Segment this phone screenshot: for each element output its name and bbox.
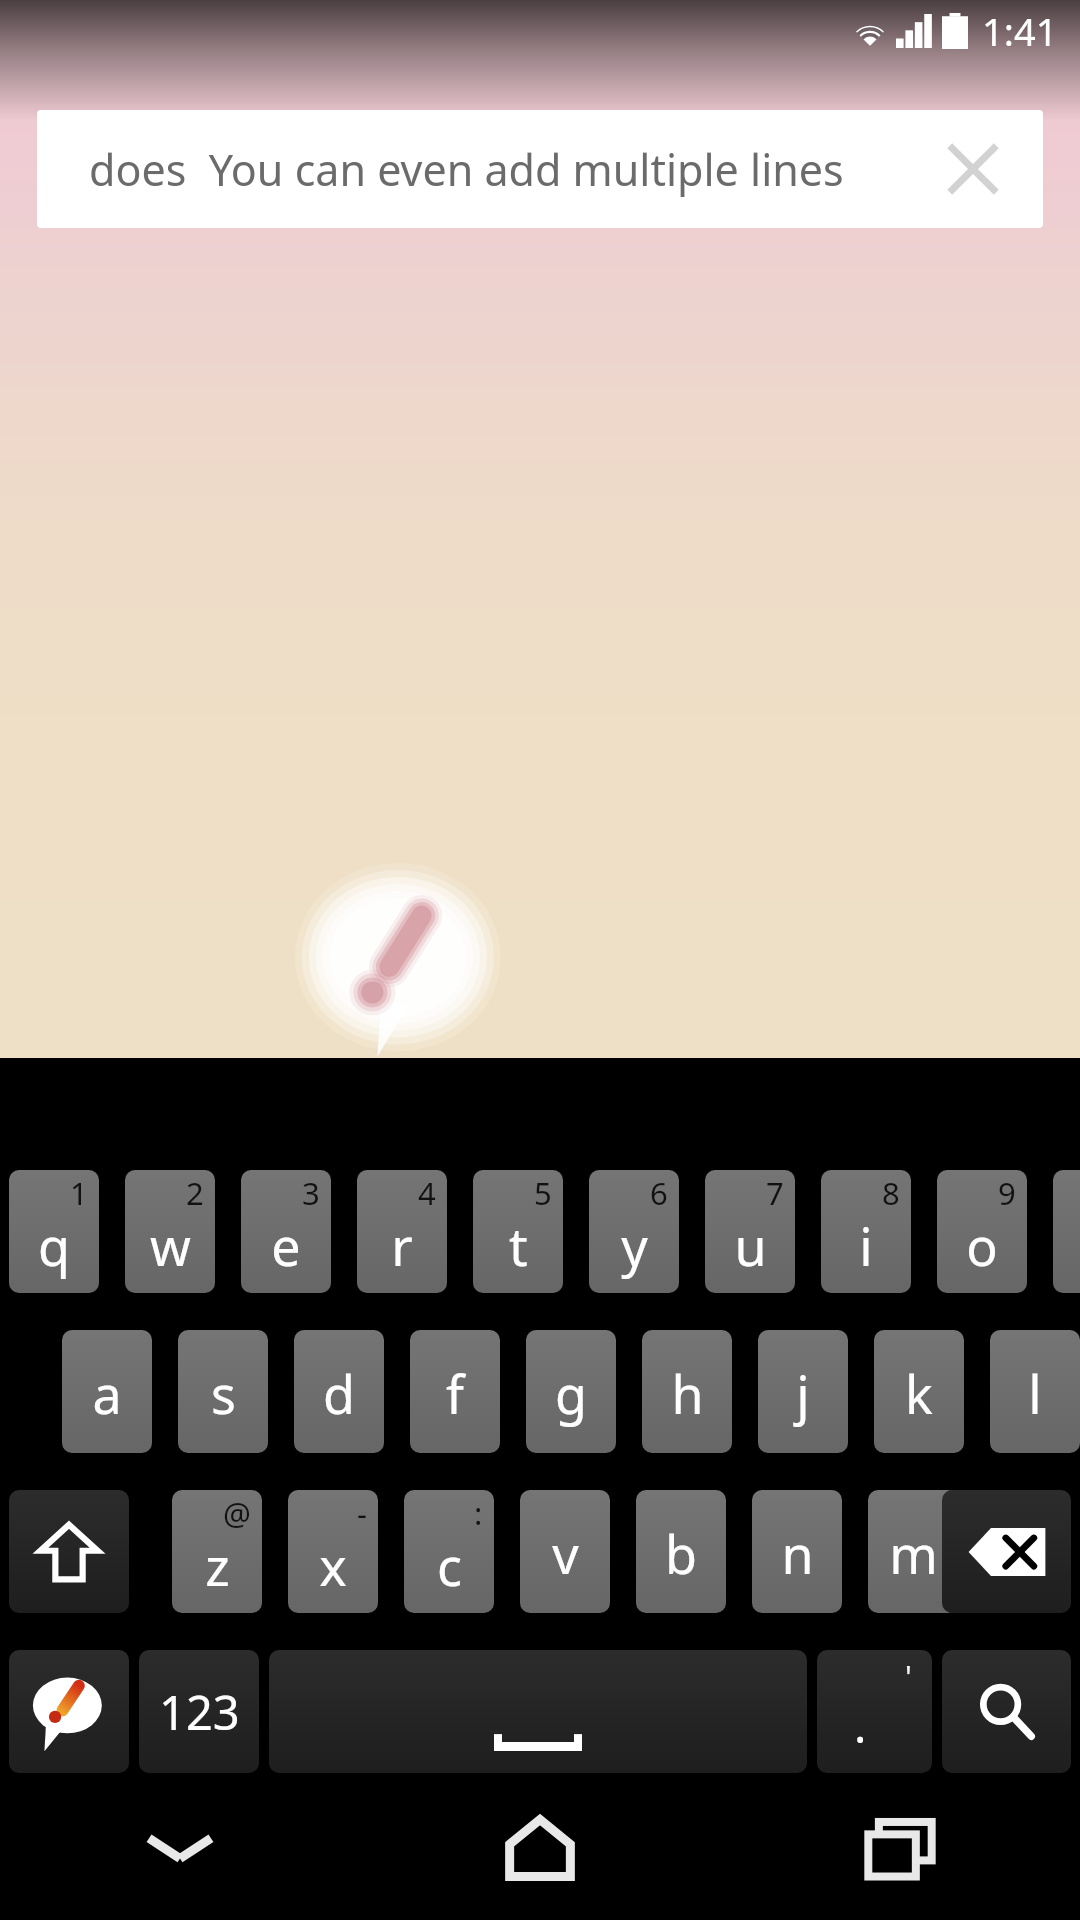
button[interactable]: Shift [9, 1490, 129, 1613]
button[interactable]: b [636, 1490, 726, 1613]
button[interactable]: Backspace [942, 1490, 1071, 1613]
button[interactable]: n [752, 1490, 842, 1613]
button[interactable]: Home [360, 1776, 720, 1920]
button[interactable]: Space [269, 1650, 807, 1773]
button[interactable]: does You can even add multiple lines [37, 110, 1043, 228]
button[interactable]: Hide keyboard [0, 1776, 360, 1920]
staticText: z [205, 1530, 230, 1601]
staticText: - [357, 1492, 367, 1534]
staticText: 2 [186, 1172, 204, 1214]
staticText: i [859, 1210, 873, 1281]
button[interactable]: l [990, 1330, 1080, 1453]
staticText: q [38, 1210, 70, 1281]
staticText: m [889, 1518, 938, 1589]
staticText: j [796, 1358, 810, 1429]
staticText: s [211, 1358, 236, 1429]
staticText: 7 [766, 1172, 784, 1214]
staticText: c [437, 1530, 462, 1601]
button[interactable]: : [404, 1490, 494, 1613]
button[interactable]: j [758, 1330, 848, 1453]
button[interactable]: 0 [1053, 1170, 1080, 1293]
button[interactable]: @ [172, 1490, 262, 1613]
button[interactable]: ' [817, 1650, 932, 1773]
staticText: d [323, 1358, 355, 1429]
button[interactable]: 5 [473, 1170, 563, 1293]
button[interactable]: k [874, 1330, 964, 1453]
button[interactable]: a [62, 1330, 152, 1453]
button[interactable]: 3 [241, 1170, 331, 1293]
button[interactable]: f [410, 1330, 500, 1453]
staticText: 3 [302, 1172, 320, 1214]
staticText: @ [223, 1492, 251, 1534]
staticText: ' [905, 1656, 912, 1697]
button[interactable]: - [288, 1490, 378, 1613]
staticText: . [854, 1694, 867, 1757]
staticText: 5 [534, 1172, 552, 1214]
staticText: r [391, 1210, 413, 1281]
staticText: t [509, 1210, 528, 1281]
staticText: g [555, 1358, 587, 1429]
staticText: u [734, 1210, 767, 1281]
staticText: w [150, 1210, 191, 1281]
button[interactable]: g [526, 1330, 616, 1453]
button[interactable]: Clear text [933, 129, 1013, 209]
staticText: o [966, 1210, 998, 1281]
button[interactable]: 9 [937, 1170, 1027, 1293]
button[interactable]: v [520, 1490, 610, 1613]
staticText: y [621, 1210, 648, 1281]
staticText: l [1028, 1358, 1042, 1429]
button[interactable]: s [178, 1330, 268, 1453]
staticText: f [446, 1358, 464, 1429]
button[interactable]: m [868, 1490, 958, 1613]
button[interactable]: d [294, 1330, 384, 1453]
button[interactable]: 7 [705, 1170, 795, 1293]
staticText: b [665, 1518, 697, 1589]
staticText: 1 [70, 1172, 88, 1214]
button[interactable]: Recent apps [720, 1776, 1080, 1920]
button[interactable]: 4 [357, 1170, 447, 1293]
staticText: h [671, 1358, 704, 1429]
staticText: 123 [159, 1680, 240, 1744]
staticText: n [781, 1518, 814, 1589]
button[interactable]: Search [942, 1650, 1071, 1773]
staticText: v [552, 1518, 579, 1589]
staticText: k [905, 1358, 933, 1429]
button[interactable]: 6 [589, 1170, 679, 1293]
staticText: : [474, 1492, 483, 1534]
staticText: 1:41 [982, 5, 1058, 57]
staticText: x [319, 1530, 347, 1601]
staticText: a [92, 1358, 122, 1429]
staticText: e [271, 1210, 301, 1281]
button[interactable]: 1 [9, 1170, 99, 1293]
staticText: 6 [650, 1172, 668, 1214]
staticText: 8 [882, 1172, 900, 1214]
button[interactable]: 2 [125, 1170, 215, 1293]
button[interactable]: h [642, 1330, 732, 1453]
button[interactable]: 123 [139, 1650, 259, 1773]
button[interactable]: 8 [821, 1170, 911, 1293]
staticText: does You can even add multiple lines [89, 140, 844, 199]
button[interactable]: Input method [9, 1650, 129, 1773]
staticText: 9 [998, 1172, 1016, 1214]
staticText: 4 [418, 1172, 436, 1214]
